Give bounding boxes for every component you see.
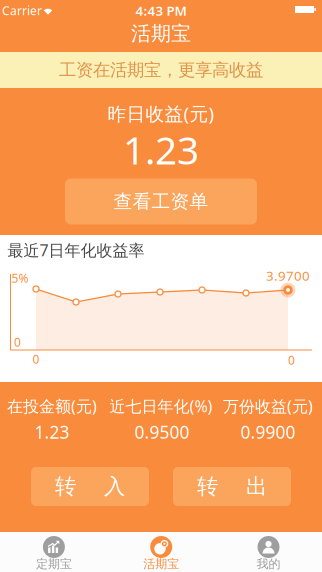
staticText: 0: [288, 352, 295, 368]
staticText: 0.9900: [240, 420, 295, 443]
staticText: 活期宝: [143, 557, 179, 571]
button[interactable]: 活期宝: [107, 532, 214, 572]
staticText: 我的: [256, 557, 280, 571]
staticText: 5%: [11, 270, 28, 286]
staticText: 0.9500: [134, 420, 189, 443]
staticText: 出: [246, 473, 267, 500]
staticText: 转: [55, 473, 76, 500]
staticText: 4:43 PM: [135, 2, 186, 19]
staticText: 0: [32, 351, 39, 367]
staticText: 昨日收益(元): [107, 101, 214, 126]
staticText: 定期宝: [36, 557, 72, 571]
button[interactable]: 转: [31, 467, 149, 506]
button[interactable]: 我的: [215, 532, 322, 572]
staticText: 在投金额(元): [7, 395, 97, 417]
staticText: Carrier: [2, 2, 42, 18]
button[interactable]: 定期宝: [0, 532, 107, 572]
staticText: 近七日年化(%): [109, 395, 212, 417]
staticText: 查看工资单: [113, 190, 208, 213]
staticText: 转: [197, 473, 218, 500]
button[interactable]: 转: [173, 467, 291, 506]
staticText: 工资在活期宝，更享高收益: [59, 59, 263, 81]
staticText: 最近7日年化收益率: [7, 239, 144, 261]
staticText: 活期宝: [131, 21, 191, 46]
staticText: 0: [14, 334, 21, 350]
staticText: 万份收益(元): [223, 395, 313, 417]
staticText: 入: [104, 473, 125, 500]
button[interactable]: 查看工资单: [65, 178, 257, 224]
staticText: 1.23: [34, 420, 69, 443]
staticText: 1.23: [123, 124, 199, 175]
staticText: 3.9700: [266, 267, 310, 284]
